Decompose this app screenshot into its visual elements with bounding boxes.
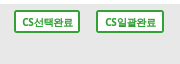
staticText: CS일괄완료	[105, 15, 156, 29]
staticText: CS선택완료	[22, 15, 73, 29]
button[interactable]: CS일괄완료	[96, 10, 164, 33]
button[interactable]: CS선택완료	[14, 10, 80, 33]
